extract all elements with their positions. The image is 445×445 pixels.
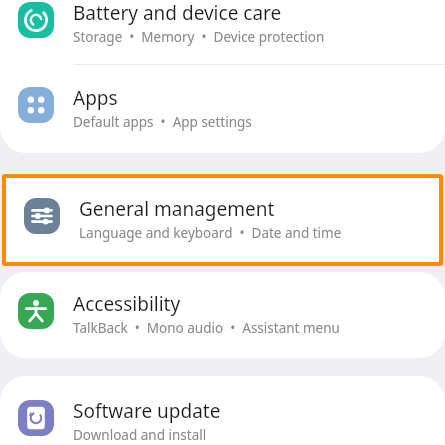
staticText: Software update [73,398,221,424]
button[interactable]: Apps [0,65,445,153]
staticText: Default apps • App settings [73,113,252,131]
staticText: TalkBack • Mono audio • Assistant menu [73,319,340,337]
button[interactable]: General management [6,178,439,262]
staticText: Apps [73,85,118,111]
staticText: Battery and device care [73,0,282,26]
staticText: Accessibility [73,291,181,317]
button[interactable]: Software update [0,376,445,445]
staticText: Download and install [73,426,207,444]
staticText: General management [79,196,275,222]
button[interactable]: Accessibility [0,272,445,358]
staticText: Language and keyboard • Date and time [79,224,342,242]
button[interactable]: Battery and device care [0,0,445,64]
staticText: Storage • Memory • Device protection [73,28,325,46]
button[interactable]: General management [6,178,439,262]
